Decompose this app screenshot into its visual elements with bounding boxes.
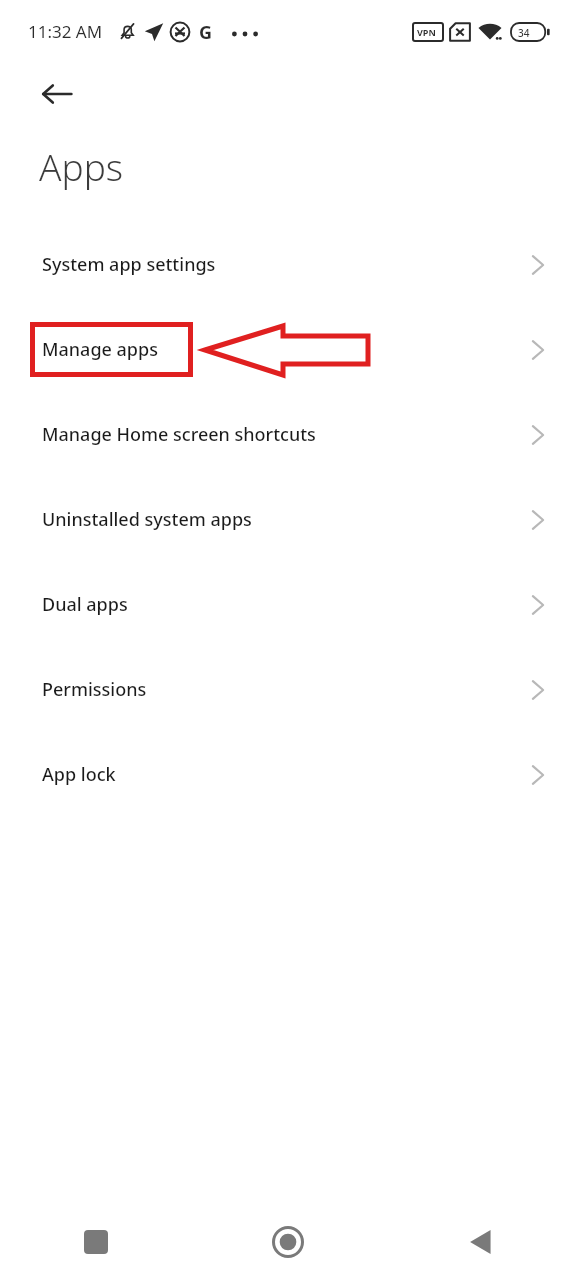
staticText: Permissions	[42, 677, 530, 702]
button[interactable]: Back	[384, 1204, 576, 1280]
button[interactable]: Uninstalled system apps	[0, 477, 576, 562]
staticText: Manage apps	[42, 337, 530, 362]
staticText: VPN	[417, 26, 436, 38]
button[interactable]: Back	[24, 62, 90, 126]
staticText: App lock	[42, 762, 530, 787]
staticText: Uninstalled system apps	[42, 507, 530, 532]
staticText: Manage Home screen shortcuts	[42, 422, 530, 447]
staticText: G	[199, 20, 213, 45]
button[interactable]: Home	[192, 1204, 384, 1280]
button[interactable]: Manage Home screen shortcuts	[0, 392, 576, 477]
button[interactable]: Recents	[0, 1204, 192, 1280]
button[interactable]: Manage apps	[0, 307, 576, 392]
staticText: Dual apps	[42, 592, 530, 617]
button[interactable]: System app settings	[0, 222, 576, 307]
button[interactable]: Dual apps	[0, 562, 576, 647]
staticText: System app settings	[42, 252, 530, 277]
button[interactable]: Permissions	[0, 647, 576, 732]
staticText: Apps	[39, 141, 124, 191]
staticText: 34	[518, 26, 530, 40]
staticText: 11:32 AM	[28, 20, 103, 43]
button[interactable]: App lock	[0, 732, 576, 817]
